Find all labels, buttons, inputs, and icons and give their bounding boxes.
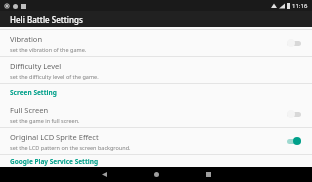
staticText: Heli Battle Settings xyxy=(10,14,83,25)
button[interactable]: Toggle off xyxy=(284,107,304,121)
button[interactable]: Toggle off xyxy=(284,36,304,50)
staticText: set the game in full screen. xyxy=(10,117,80,124)
staticText: 11:16 xyxy=(292,2,308,10)
button[interactable]: Difficulty Level xyxy=(0,57,312,83)
button[interactable]: Full Screen xyxy=(0,101,312,127)
staticText: set the LCD pattern on the screen backgr… xyxy=(10,144,131,151)
staticText: Full Screen xyxy=(10,105,49,115)
button[interactable]: Original LCD Sprite Effect xyxy=(0,128,312,154)
staticText: Google Play Service Setting xyxy=(10,157,99,166)
staticText: Difficulty Level xyxy=(10,61,62,71)
button[interactable]: Vibration xyxy=(0,30,312,56)
button[interactable]: Toggle on xyxy=(284,134,304,148)
staticText: set the difficulty level of the game. xyxy=(10,73,99,80)
button[interactable]: Back xyxy=(92,167,116,182)
staticText: Vibration xyxy=(10,34,43,44)
staticText: Screen Setting xyxy=(10,88,57,97)
staticText: Original LCD Sprite Effect xyxy=(10,132,99,142)
staticText: set the vibration of the game. xyxy=(10,46,87,53)
button[interactable]: Recents xyxy=(196,167,220,182)
button[interactable]: Home xyxy=(144,167,168,182)
